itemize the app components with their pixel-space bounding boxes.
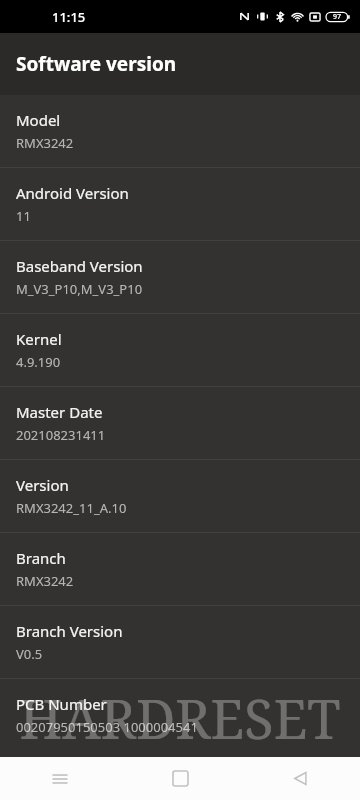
staticText: 202108231411: [16, 426, 106, 444]
button[interactable]: Back: [240, 757, 360, 800]
staticText: 00207950150503 1000004541: [16, 718, 198, 736]
button[interactable]: PCB Number: [0, 679, 360, 751]
staticText: V0.5: [16, 645, 43, 663]
staticText: RMX3242_11_A.10: [16, 499, 127, 517]
button[interactable]: Version: [0, 460, 360, 533]
staticText: Kernel: [16, 329, 62, 349]
staticText: Android Version: [16, 183, 129, 203]
staticText: RMX3242: [16, 572, 74, 590]
staticText: PCB Number: [16, 694, 107, 714]
staticText: Version: [16, 475, 69, 495]
staticText: 97: [333, 12, 342, 22]
button[interactable]: Branch Version: [0, 606, 360, 679]
button[interactable]: Branch: [0, 533, 360, 606]
button[interactable]: Home: [120, 757, 240, 800]
button[interactable]: Model: [0, 95, 360, 168]
staticText: Branch: [16, 548, 66, 568]
button[interactable]: Recent apps: [0, 757, 120, 800]
staticText: Master Date: [16, 402, 103, 422]
staticText: 4.9.190: [16, 353, 61, 371]
staticText: 11:15: [52, 8, 86, 26]
staticText: M_V3_P10,M_V3_P10: [16, 280, 143, 298]
staticText: 11: [16, 207, 31, 225]
staticText: Branch Version: [16, 621, 123, 641]
staticText: Software version: [16, 51, 177, 77]
button[interactable]: Kernel: [0, 314, 360, 387]
button[interactable]: Baseband Version: [0, 241, 360, 314]
staticText: HARDRESET: [0, 681, 360, 755]
staticText: RMX3242: [16, 134, 74, 152]
button[interactable]: Android Version: [0, 168, 360, 241]
staticText: Baseband Version: [16, 256, 143, 276]
button[interactable]: Master Date: [0, 387, 360, 460]
staticText: Model: [16, 110, 61, 130]
